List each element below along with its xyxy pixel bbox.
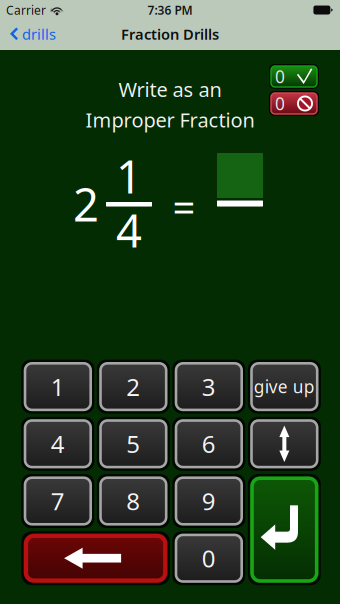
button[interactable]: Backspace xyxy=(24,534,167,583)
button[interactable]: give up xyxy=(250,362,318,411)
staticText: Write as an xyxy=(118,76,221,103)
staticText: = xyxy=(172,180,195,233)
button[interactable]: 6 xyxy=(175,419,243,468)
staticText: 5 xyxy=(126,428,140,460)
staticText: give up xyxy=(254,375,315,398)
staticText: 1 xyxy=(116,146,142,206)
button[interactable]: 3 xyxy=(175,362,243,411)
staticText: 2 xyxy=(126,371,140,403)
button[interactable]: Correct answers xyxy=(271,66,317,87)
staticText: Fraction Drills xyxy=(121,24,219,44)
staticText: 7:36 PM xyxy=(147,2,192,18)
staticText: 0 xyxy=(202,542,216,574)
staticText: 6 xyxy=(202,428,216,460)
staticText: 3 xyxy=(202,371,216,403)
staticText: 0 xyxy=(275,92,285,115)
button[interactable]: 0 xyxy=(175,534,243,583)
staticText: 1 xyxy=(51,371,65,403)
button[interactable]: 7 xyxy=(24,476,92,526)
button[interactable]: 8 xyxy=(99,476,167,526)
button[interactable]: Enter xyxy=(250,476,318,583)
button[interactable]: drills xyxy=(0,20,66,50)
button[interactable]: 5 xyxy=(99,419,167,468)
staticText: 7 xyxy=(51,485,65,517)
staticText: Improper Fraction xyxy=(85,107,254,133)
button[interactable]: 2 xyxy=(99,362,167,411)
staticText: 9 xyxy=(202,485,216,517)
button[interactable]: 1 xyxy=(24,362,92,411)
button[interactable]: Switch numerator or denominator xyxy=(250,419,318,468)
staticText: Carrier xyxy=(6,2,46,18)
staticText: drills xyxy=(22,24,56,44)
button[interactable]: 4 xyxy=(24,419,92,468)
staticText: 4 xyxy=(51,428,65,460)
button[interactable]: Wrong answers xyxy=(271,93,317,114)
staticText: 4 xyxy=(116,200,142,260)
staticText: 2 xyxy=(73,174,99,234)
staticText: 8 xyxy=(126,485,140,517)
button[interactable]: 9 xyxy=(175,476,243,526)
staticText: 0 xyxy=(275,65,285,88)
